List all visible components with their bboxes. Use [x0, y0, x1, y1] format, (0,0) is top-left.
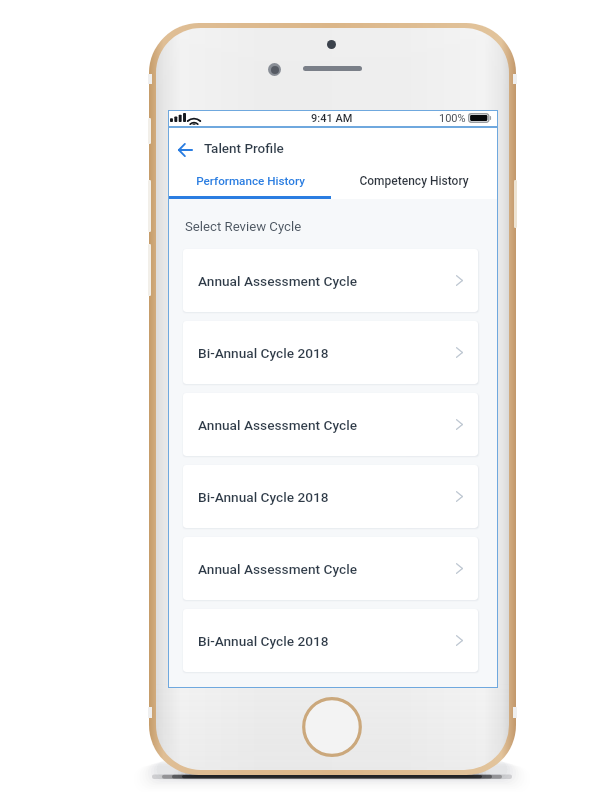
staticText: Competency History [359, 174, 469, 188]
button[interactable]: Bi-Annual Cycle 2018 [183, 321, 478, 384]
staticText: Select Review Cycle [185, 219, 302, 234]
button[interactable]: Annual Assessment Cycle [183, 249, 478, 312]
staticText: Annual Assessment Cycle [198, 561, 358, 577]
staticText: 100% [439, 112, 466, 125]
button[interactable]: Annual Assessment Cycle [183, 393, 478, 456]
staticText: Performance History [196, 174, 305, 188]
button[interactable]: Back [171, 136, 199, 164]
button[interactable]: Performance History [169, 169, 331, 199]
staticText: Bi-Annual Cycle 2018 [198, 633, 329, 649]
staticText: Bi-Annual Cycle 2018 [198, 489, 329, 505]
staticText: Annual Assessment Cycle [198, 417, 358, 433]
button[interactable]: Bi-Annual Cycle 2018 [183, 465, 478, 528]
staticText: Talent Profile [204, 140, 284, 156]
button[interactable]: Annual Assessment Cycle [183, 537, 478, 600]
staticText: 9:41 AM [311, 112, 353, 125]
staticText: Bi-Annual Cycle 2018 [198, 345, 329, 361]
button[interactable]: Bi-Annual Cycle 2018 [183, 609, 478, 672]
staticText: Annual Assessment Cycle [198, 273, 358, 289]
button[interactable]: Competency History [331, 169, 497, 199]
